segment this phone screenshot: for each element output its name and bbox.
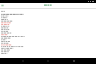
button[interactable]: Home [45,58,51,64]
button[interactable]: Navigate up [1,4,4,7]
button[interactable]: Back [20,58,26,64]
button[interactable]: Recent apps [71,58,77,64]
